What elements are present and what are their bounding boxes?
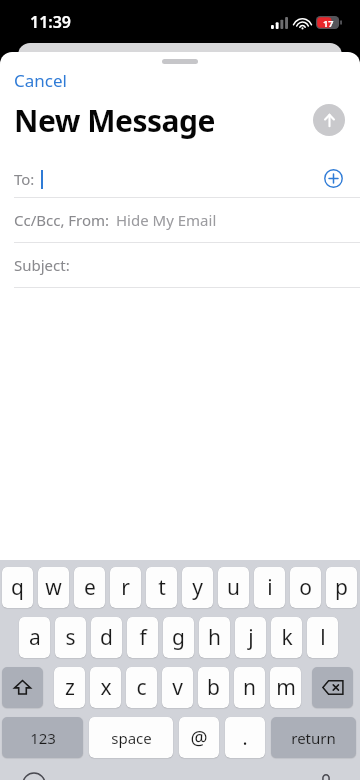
staticText: s bbox=[65, 623, 76, 652]
staticText: 11:39 bbox=[30, 11, 72, 33]
button[interactable]: 123 bbox=[2, 717, 83, 758]
button[interactable]: To: bbox=[0, 160, 360, 197]
button[interactable]: x bbox=[90, 667, 121, 708]
staticText: g bbox=[172, 623, 185, 652]
staticText: d bbox=[100, 623, 113, 652]
staticText: a bbox=[29, 623, 41, 652]
staticText: m bbox=[276, 673, 296, 702]
staticText: w bbox=[45, 573, 62, 602]
button[interactable]: k bbox=[271, 617, 302, 658]
staticText: r bbox=[121, 573, 130, 602]
staticText: n bbox=[243, 673, 256, 702]
staticText: @ bbox=[190, 725, 208, 751]
button[interactable]: Cc/Bcc, From: bbox=[0, 198, 360, 242]
button[interactable]: j bbox=[235, 617, 266, 658]
button[interactable]: b bbox=[198, 667, 229, 708]
staticText: New Message bbox=[14, 100, 215, 141]
staticText: t bbox=[158, 573, 166, 602]
button[interactable]: h bbox=[199, 617, 230, 658]
staticText: 17 bbox=[323, 17, 334, 29]
button[interactable]: . bbox=[225, 717, 265, 758]
button[interactable]: space bbox=[89, 717, 173, 758]
button[interactable]: r bbox=[110, 567, 141, 608]
staticText: j bbox=[248, 623, 254, 652]
staticText: . bbox=[242, 725, 248, 751]
staticText: To: bbox=[14, 169, 35, 189]
staticText: x bbox=[100, 673, 112, 702]
button[interactable]: Subject: bbox=[0, 243, 360, 287]
staticText: o bbox=[299, 573, 312, 602]
button[interactable]: Cancel bbox=[0, 65, 81, 94]
button[interactable]: c bbox=[126, 667, 157, 708]
staticText: k bbox=[281, 623, 293, 652]
button[interactable]: s bbox=[55, 617, 86, 658]
button[interactable]: d bbox=[91, 617, 122, 658]
staticText: Cancel bbox=[14, 69, 67, 92]
button[interactable]: u bbox=[218, 567, 249, 608]
button[interactable]: return bbox=[271, 717, 356, 758]
button[interactable]: Dictation bbox=[312, 770, 340, 780]
button[interactable]: o bbox=[290, 567, 321, 608]
button[interactable]: e bbox=[74, 567, 105, 608]
button[interactable]: a bbox=[19, 617, 50, 658]
staticText: z bbox=[65, 673, 75, 702]
staticText: return bbox=[291, 728, 336, 748]
staticText: v bbox=[172, 673, 183, 702]
staticText: e bbox=[84, 573, 96, 602]
staticText: q bbox=[11, 573, 24, 602]
staticText: Hide My Email bbox=[116, 210, 217, 230]
button[interactable]: q bbox=[2, 567, 33, 608]
button[interactable]: z bbox=[54, 667, 85, 708]
staticText: p bbox=[335, 573, 348, 602]
staticText: b bbox=[207, 673, 220, 702]
button[interactable]: l bbox=[307, 617, 338, 658]
button[interactable]: @ bbox=[179, 717, 219, 758]
button[interactable]: n bbox=[234, 667, 265, 708]
button[interactable]: i bbox=[254, 567, 285, 608]
staticText: Subject: bbox=[14, 255, 70, 275]
staticText: f bbox=[139, 623, 147, 652]
button[interactable]: m bbox=[270, 667, 301, 708]
staticText: i bbox=[267, 573, 273, 602]
button[interactable]: f bbox=[127, 617, 158, 658]
button[interactable]: Shift bbox=[2, 667, 43, 708]
button[interactable]: p bbox=[326, 567, 357, 608]
staticText: space bbox=[111, 728, 152, 748]
button[interactable]: y bbox=[182, 567, 213, 608]
button[interactable]: Send bbox=[313, 104, 345, 136]
button[interactable]: Backspace bbox=[312, 667, 353, 708]
staticText: 123 bbox=[30, 728, 56, 748]
staticText: y bbox=[192, 573, 203, 602]
button[interactable]: w bbox=[38, 567, 69, 608]
staticText: Cc/Bcc, From: bbox=[14, 210, 110, 230]
button[interactable]: g bbox=[163, 617, 194, 658]
staticText: l bbox=[320, 623, 326, 652]
staticText: c bbox=[136, 673, 147, 702]
button[interactable]: t bbox=[146, 567, 177, 608]
button[interactable]: Emoji bbox=[20, 770, 48, 780]
button[interactable]: v bbox=[162, 667, 193, 708]
staticText: h bbox=[208, 623, 221, 652]
button[interactable]: Add contact bbox=[324, 169, 343, 188]
staticText: u bbox=[227, 573, 240, 602]
